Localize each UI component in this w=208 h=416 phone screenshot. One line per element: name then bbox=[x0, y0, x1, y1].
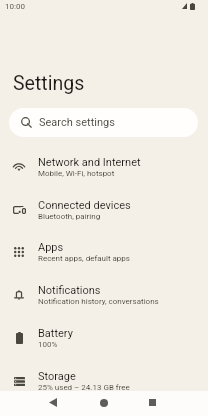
staticText: Notifications bbox=[38, 284, 101, 297]
staticText: Recent apps, default apps bbox=[38, 254, 130, 263]
staticText: Storage bbox=[38, 370, 76, 383]
button[interactable]: Recent apps bbox=[140, 391, 164, 416]
button[interactable]: Search settings bbox=[9, 108, 198, 137]
button[interactable]: Notifications bbox=[0, 273, 208, 316]
button[interactable]: Back bbox=[41, 391, 65, 416]
staticText: Apps bbox=[38, 241, 64, 254]
button[interactable]: Apps bbox=[0, 230, 208, 273]
button[interactable]: Storage bbox=[0, 359, 208, 402]
button[interactable]: Battery bbox=[0, 316, 208, 359]
staticText: Battery bbox=[38, 327, 73, 340]
staticText: Mobile, Wi-Fi, hotspot bbox=[38, 169, 115, 178]
staticText: Notification history, conversations bbox=[38, 297, 159, 306]
staticText: Network and Internet bbox=[38, 156, 141, 169]
button[interactable]: Network and Internet bbox=[0, 145, 208, 188]
staticText: Settings bbox=[13, 72, 85, 95]
staticText: 10:00 bbox=[5, 2, 25, 11]
button[interactable]: Connected devices bbox=[0, 188, 208, 231]
button[interactable]: Home bbox=[92, 391, 116, 416]
staticText: Connected devices bbox=[38, 199, 131, 212]
staticText: 25% used – 24.13 GB free bbox=[38, 383, 130, 392]
staticText: Bluetooth, pairing bbox=[38, 212, 101, 221]
staticText: 100% bbox=[38, 340, 58, 349]
staticText: Search settings bbox=[39, 116, 115, 129]
